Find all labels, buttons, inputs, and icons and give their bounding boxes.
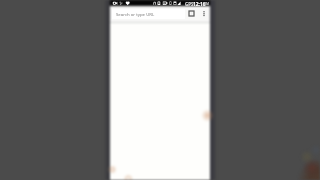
staticText: 12:16 <box>193 1 206 7</box>
button[interactable]: More options <box>200 7 208 19</box>
button[interactable]: Search or type URL <box>112 9 185 19</box>
staticText: PM <box>204 2 209 6</box>
staticText: Search or type URL <box>116 11 155 17</box>
staticText: GPS <box>185 1 194 7</box>
button[interactable]: Tabs <box>185 7 198 19</box>
